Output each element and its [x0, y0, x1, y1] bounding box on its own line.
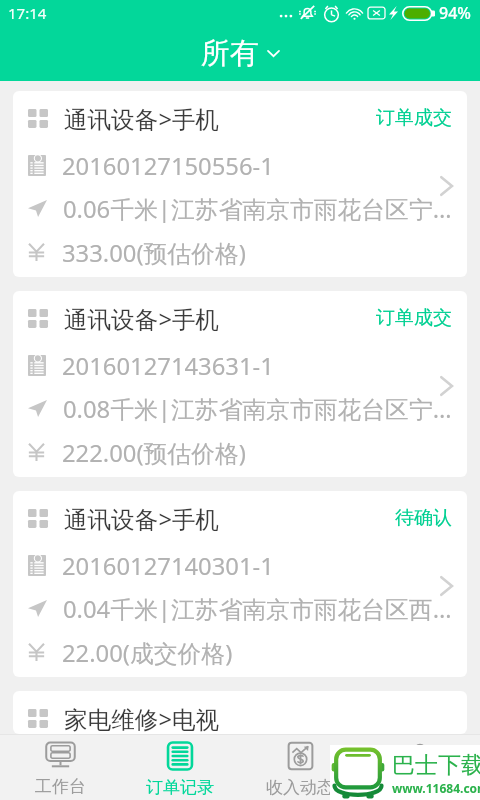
- staticText: 94%: [439, 2, 471, 24]
- staticText: 17:14: [8, 3, 47, 23]
- staticText: 订单记录: [146, 777, 214, 798]
- staticText: 工作台: [35, 776, 86, 797]
- staticText: 0.04千米|江苏省南京市雨花台区西…: [63, 593, 452, 623]
- button[interactable]: 通讯设备>手机: [13, 491, 467, 677]
- staticText: 333.00(预估价格): [62, 237, 246, 267]
- staticText: 收入动态: [266, 777, 334, 798]
- staticText: 巴士下载: [392, 751, 480, 780]
- button[interactable]: 我的: [360, 735, 480, 800]
- staticText: 0.06千米|江苏省南京市雨花台区宁…: [63, 193, 452, 223]
- staticText: 订单成交: [376, 106, 452, 130]
- button[interactable]: 所有: [191, 31, 289, 76]
- staticText: 所有: [201, 35, 259, 72]
- button[interactable]: 工作台: [0, 735, 120, 800]
- button[interactable]: 收入动态: [240, 735, 360, 800]
- staticText: 0.08千米|江苏省南京市雨花台区宁…: [63, 393, 452, 423]
- staticText: 22.00(成交价格): [62, 637, 233, 667]
- staticText: 家电维修>电视: [64, 703, 220, 733]
- staticText: 通讯设备>手机: [64, 503, 220, 533]
- staticText: 20160127140301-1: [62, 550, 274, 580]
- staticText: 待确认: [395, 506, 452, 530]
- staticText: 通讯设备>手机: [64, 303, 220, 333]
- button[interactable]: 通讯设备>手机: [13, 91, 467, 277]
- button[interactable]: 通讯设备>手机: [13, 291, 467, 477]
- staticText: 20160127150556-1: [62, 150, 274, 180]
- staticText: 我的: [403, 777, 437, 798]
- staticText: www.11684.com: [392, 780, 480, 796]
- staticText: 通讯设备>手机: [64, 103, 220, 133]
- staticText: 20160127143631-1: [62, 350, 274, 380]
- staticText: 订单成交: [376, 306, 452, 330]
- button[interactable]: 订单记录: [120, 735, 240, 800]
- staticText: 222.00(预估价格): [62, 437, 246, 467]
- button[interactable]: 家电维修>电视: [13, 691, 467, 734]
